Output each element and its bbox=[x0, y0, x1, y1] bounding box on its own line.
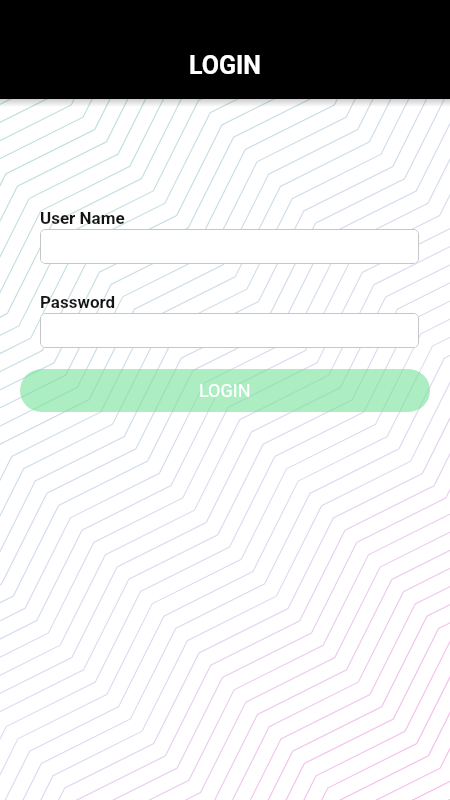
button[interactable]: User Name input bbox=[40, 229, 419, 264]
staticText: Password bbox=[40, 292, 116, 312]
staticText: User Name bbox=[40, 208, 125, 228]
staticText: LOGIN bbox=[189, 51, 261, 80]
button[interactable]: Password input bbox=[40, 313, 419, 348]
staticText: LOGIN bbox=[199, 380, 251, 401]
button[interactable]: LOGIN bbox=[20, 369, 430, 412]
